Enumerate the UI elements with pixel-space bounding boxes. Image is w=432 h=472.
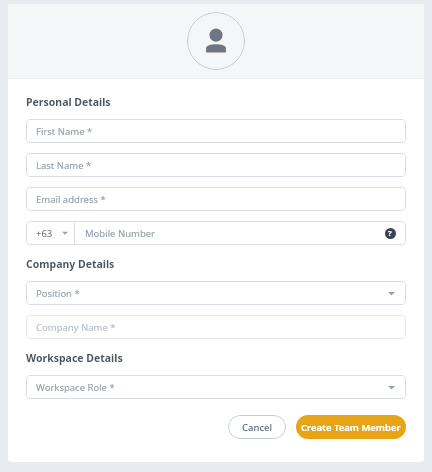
button[interactable]: Create Team Member <box>296 415 406 439</box>
button[interactable]: Mobile Number <box>75 222 383 244</box>
button[interactable]: Cancel <box>228 415 286 439</box>
staticText: First Name * <box>36 125 93 138</box>
button[interactable]: Help <box>383 226 397 240</box>
button[interactable]: Workspace Role * <box>26 375 406 399</box>
button[interactable]: Position * <box>26 281 406 305</box>
staticText: Position * <box>36 287 80 300</box>
button[interactable]: First Name * <box>26 119 406 143</box>
staticText: ? <box>388 228 392 238</box>
staticText: Mobile Number <box>85 227 156 240</box>
staticText: Company Name * <box>36 321 116 334</box>
button[interactable]: Profile photo <box>187 12 245 70</box>
staticText: +63 <box>36 227 53 240</box>
button[interactable]: Last Name * <box>26 153 406 177</box>
staticText: Last Name * <box>36 159 92 172</box>
button[interactable]: +63 <box>26 222 74 244</box>
staticText: Cancel <box>242 421 273 434</box>
staticText: Personal Details <box>26 95 111 109</box>
button[interactable]: Email address * <box>26 187 406 211</box>
staticText: Workspace Role * <box>36 381 115 394</box>
button[interactable]: Company Name * <box>26 315 406 339</box>
staticText: Create Team Member <box>301 421 401 434</box>
staticText: Company Details <box>26 257 115 271</box>
staticText: Email address * <box>36 193 106 206</box>
staticText: Workspace Details <box>26 351 123 365</box>
